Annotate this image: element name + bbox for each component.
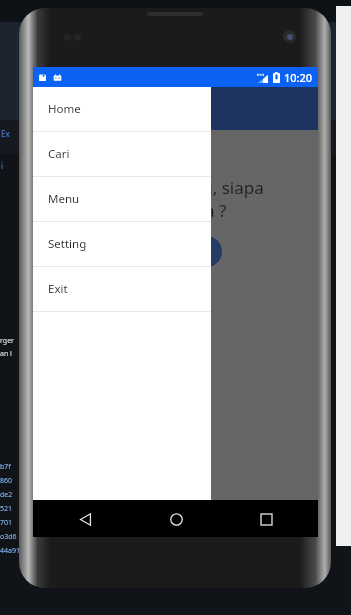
staticText: Setting [48, 236, 87, 252]
staticText: 44a914b3- [0, 546, 35, 556]
staticText: an l [0, 349, 12, 359]
staticText: Menu [48, 191, 80, 207]
button[interactable]: MASUK [130, 236, 222, 267]
button[interactable]: Exit [33, 267, 211, 311]
button[interactable]: Home [162, 505, 190, 533]
button[interactable]: Back [71, 505, 99, 533]
button[interactable]: Recent apps [252, 505, 280, 533]
staticText: 521 [0, 504, 13, 514]
button[interactable]: Setting [33, 222, 211, 266]
button[interactable]: Aplikasi Pencari Loker [33, 87, 318, 130]
staticText: Selamat datang, siapa nama anda ? [49, 176, 302, 222]
button[interactable]: Home [33, 87, 211, 131]
staticText: 701 [0, 518, 13, 528]
staticText: Home [48, 101, 81, 117]
staticText: Exit [48, 281, 68, 297]
staticText: Aplikasi Pencari Loker [47, 99, 191, 118]
staticText: Cari [48, 146, 70, 162]
staticText: b7f [0, 462, 11, 472]
staticText: 10:20 [284, 70, 313, 85]
staticText: Ex [1, 128, 10, 139]
staticText: de2 [0, 490, 13, 500]
staticText: rger [0, 336, 14, 346]
staticText: 860 [0, 476, 13, 486]
staticText: i [1, 160, 4, 171]
button[interactable]: Menu [33, 177, 211, 221]
button[interactable]: Cari [33, 132, 211, 176]
staticText: o3d6 [0, 532, 17, 542]
